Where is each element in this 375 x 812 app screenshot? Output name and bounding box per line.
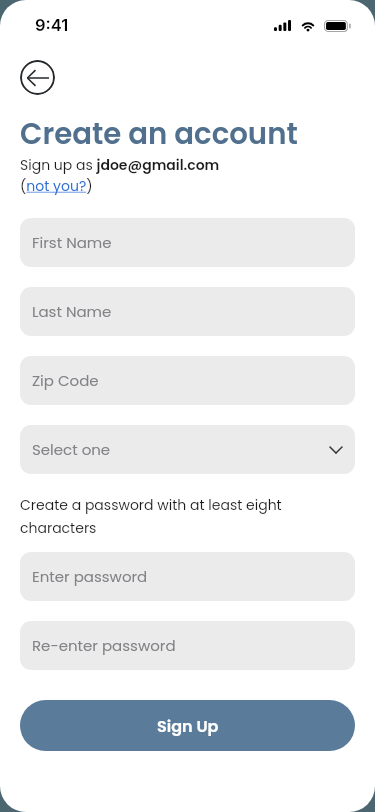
button[interactable]: Re-enter password <box>20 621 355 670</box>
staticText: Re-enter password <box>32 635 176 656</box>
staticText: Last Name <box>32 301 112 322</box>
staticText: Zip Code <box>32 370 99 391</box>
staticText: Enter password <box>32 566 148 587</box>
button[interactable]: Back <box>20 60 55 95</box>
button[interactable]: Zip Code <box>20 356 355 405</box>
staticText: Create a password with at least eight <box>20 495 282 515</box>
button[interactable]: Sign Up <box>20 700 355 751</box>
staticText: Create an account <box>20 113 298 154</box>
staticText: Select one <box>32 439 111 460</box>
button[interactable]: First Name <box>20 218 355 267</box>
staticText: characters <box>20 518 97 538</box>
staticText: Sign up as jdoe@gmail.com <box>20 155 220 175</box>
staticText: 9:41 <box>35 15 69 35</box>
staticText: (not you?) <box>20 176 93 196</box>
button[interactable]: Select one <box>20 425 355 474</box>
staticText: Sign Up <box>157 715 219 737</box>
staticText: First Name <box>32 232 112 253</box>
button[interactable]: Enter password <box>20 552 355 601</box>
button[interactable]: Last Name <box>20 287 355 336</box>
